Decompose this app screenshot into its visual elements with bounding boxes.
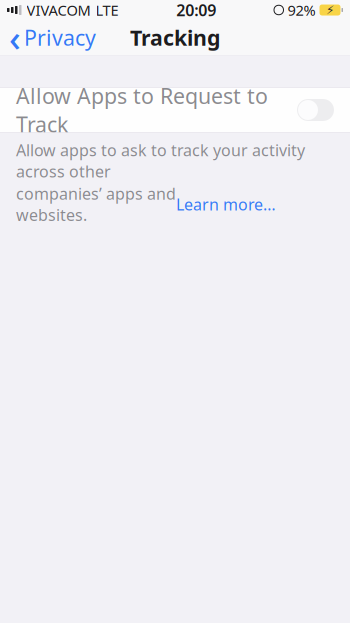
- button[interactable]: Allow Apps to Request to Track: [0, 88, 350, 132]
- staticText: companies’ apps and websites.: [16, 183, 176, 225]
- staticText: LTE: [95, 0, 118, 20]
- staticText: 20:09: [176, 0, 216, 21]
- staticText: Tracking: [130, 23, 220, 52]
- button[interactable]: ‹: [0, 9, 96, 66]
- staticText: Allow apps to ask to track your activity…: [16, 139, 305, 182]
- staticText: Learn more…: [176, 194, 276, 215]
- staticText: Allow Apps to Request to Track: [16, 82, 268, 138]
- staticText: Privacy: [24, 23, 96, 52]
- button[interactable]: Learn more…: [176, 194, 276, 215]
- staticText: 92%: [287, 0, 315, 20]
- staticText: ‹: [9, 14, 21, 61]
- staticText: VIVACOM: [26, 0, 90, 20]
- staticText: ⚡︎: [326, 3, 334, 17]
